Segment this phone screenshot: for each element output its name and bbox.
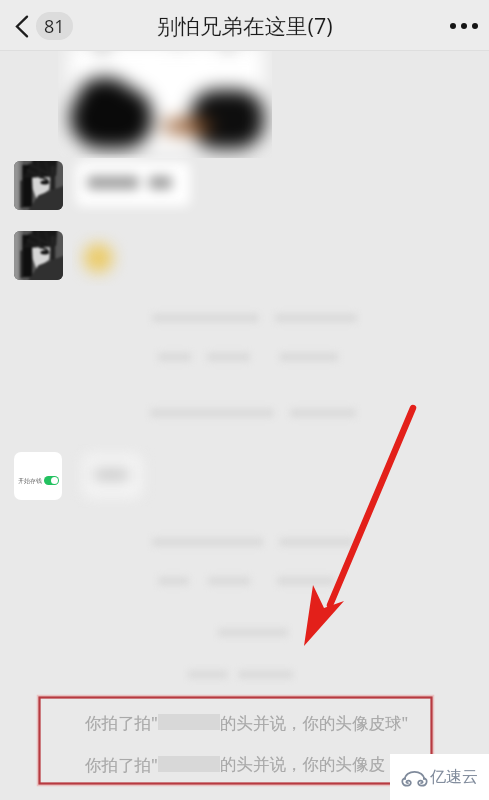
button[interactable]: Avatar	[14, 161, 63, 210]
staticText: 开始存钱	[18, 477, 42, 485]
button[interactable]: Avatar	[14, 231, 63, 280]
staticText: 你拍了拍"	[85, 711, 158, 734]
staticText: 81	[44, 14, 65, 39]
button[interactable]: 你拍了拍"	[85, 748, 385, 780]
staticText: 的头并说，你的头像皮球"	[220, 711, 409, 734]
button[interactable]: More options	[427, 0, 489, 51]
staticText: 你拍了拍"	[85, 753, 158, 776]
button[interactable]: 你拍了拍"	[85, 706, 409, 738]
button[interactable]: Back, 81 unread	[12, 6, 77, 46]
button[interactable]: Highlighted pat messages	[38, 696, 433, 785]
staticText: 的头并说，你的头像皮	[220, 754, 385, 775]
staticText: 别怕兄弟在这里(7)	[157, 11, 333, 40]
staticText: 亿速云	[430, 767, 478, 787]
